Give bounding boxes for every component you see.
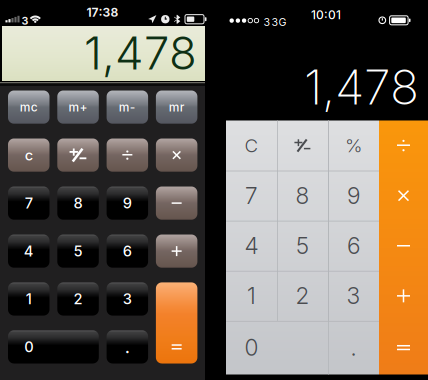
staticText: 7 [25, 194, 33, 212]
button[interactable]: c [8, 138, 49, 172]
staticText: 3G [271, 16, 286, 28]
button[interactable]: 0 [226, 321, 328, 374]
button[interactable]: Plus minus [277, 120, 328, 171]
staticText: 1 [26, 290, 32, 308]
button[interactable]: mc [8, 90, 49, 124]
staticText: mr [169, 100, 185, 114]
button[interactable]: 2 [57, 282, 99, 316]
button[interactable] [156, 234, 197, 268]
button[interactable] [107, 138, 148, 172]
staticText: 1,478 [304, 58, 419, 116]
button[interactable]: mr [156, 90, 197, 124]
staticText: 1 [247, 282, 256, 309]
staticText: 1,478 [84, 26, 197, 80]
staticText: 7 [245, 182, 258, 209]
button[interactable]: . [107, 330, 148, 363]
button[interactable]: 4 [226, 221, 277, 271]
staticText: m- [119, 100, 136, 114]
button[interactable]: 6 [107, 234, 148, 268]
button[interactable] [156, 186, 197, 220]
button[interactable]: 4 [8, 234, 49, 268]
button[interactable] [57, 138, 99, 172]
staticText: 9 [123, 194, 132, 212]
button[interactable]: 1 [226, 271, 277, 321]
button[interactable]: 9 [328, 171, 379, 221]
staticText: 4 [24, 242, 34, 260]
button[interactable]: Operator [379, 120, 428, 171]
staticText: 5 [296, 232, 309, 259]
button[interactable]: 5 [277, 221, 328, 271]
staticText: 5 [73, 242, 82, 260]
staticText: 10:01 [311, 8, 341, 22]
button[interactable]: 9 [107, 186, 148, 220]
button[interactable]: 8 [277, 171, 328, 221]
button[interactable]: Equals [379, 321, 428, 374]
button[interactable]: 5 [57, 234, 99, 268]
staticText: C [244, 134, 258, 157]
button[interactable]: Operator [379, 171, 428, 221]
button[interactable]: 6 [328, 221, 379, 271]
button[interactable] [156, 282, 197, 363]
staticText: 8 [73, 194, 82, 212]
button[interactable]: m- [107, 90, 148, 124]
staticText: 8 [295, 182, 309, 209]
staticText: 2 [295, 282, 309, 309]
button[interactable]: 8 [57, 186, 99, 220]
button[interactable]: 3 [328, 271, 379, 321]
button[interactable]: 7 [226, 171, 277, 221]
staticText: c [25, 146, 33, 164]
staticText: 6 [123, 242, 132, 260]
button[interactable]: Operator [379, 271, 428, 321]
button[interactable]: 0 [8, 330, 99, 363]
staticText: 0 [244, 334, 258, 361]
staticText: 9 [347, 182, 360, 209]
button[interactable] [156, 138, 197, 172]
button[interactable]: % [328, 120, 379, 171]
staticText: 3 [21, 14, 28, 27]
staticText: . [125, 336, 130, 357]
button[interactable]: 1 [8, 282, 49, 316]
button[interactable]: 2 [277, 271, 328, 321]
staticText: 6 [347, 232, 360, 259]
staticText: 4 [244, 232, 258, 259]
button[interactable]: 7 [8, 186, 49, 220]
staticText: 3 [123, 290, 132, 308]
staticText: 2 [73, 290, 82, 308]
button[interactable]: C [226, 120, 277, 171]
staticText: . [350, 334, 356, 361]
button[interactable]: 3 [107, 282, 148, 316]
staticText: % [345, 134, 362, 157]
staticText: m+ [68, 100, 87, 114]
staticText: 0 [24, 338, 33, 356]
staticText: mc [20, 100, 38, 114]
staticText: 3 [346, 282, 360, 309]
staticText: 3 [263, 16, 270, 28]
button[interactable]: . [328, 321, 379, 374]
button[interactable]: m+ [57, 90, 99, 124]
staticText: 17:38 [86, 5, 118, 20]
button[interactable]: Operator [379, 221, 428, 271]
